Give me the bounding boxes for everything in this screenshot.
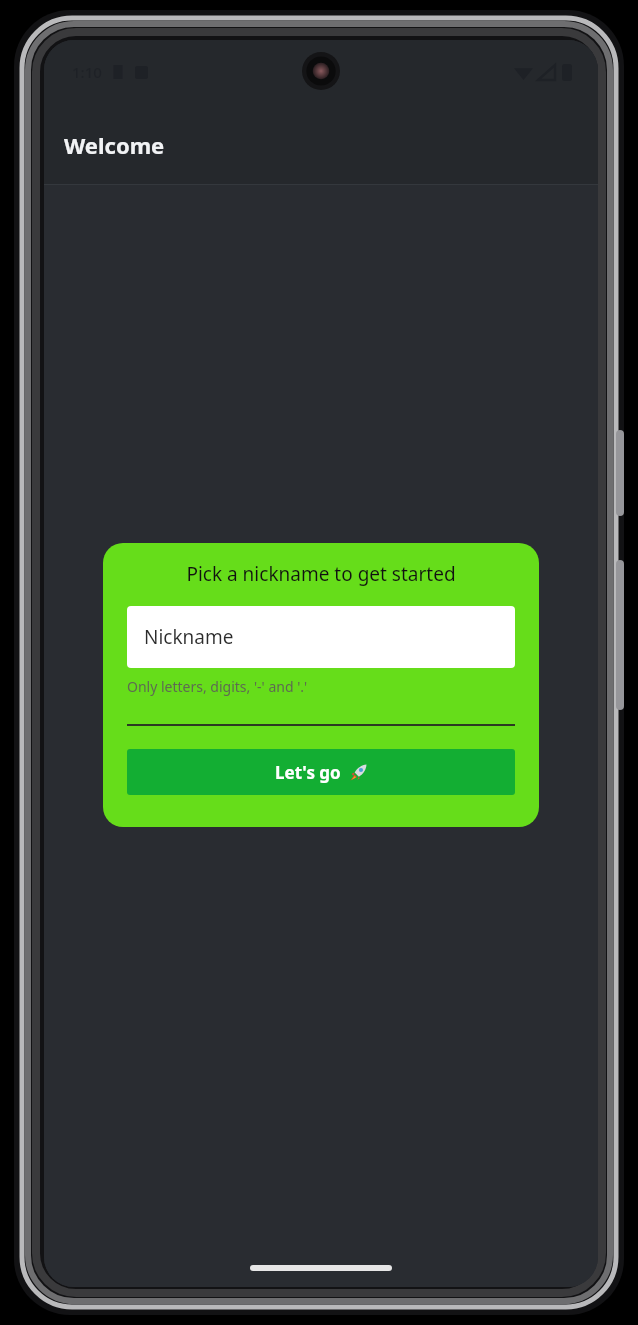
button[interactable]: Let's go [127, 749, 515, 795]
staticText: Pick a nickname to get started [186, 561, 456, 587]
staticText: Only letters, digits, '-' and '.' [127, 677, 515, 696]
staticText: Let's go [275, 761, 341, 784]
other: rocket [349, 763, 368, 782]
button[interactable]: Nickname [127, 606, 515, 668]
staticText: Nickname [144, 624, 234, 650]
staticText: Welcome [64, 130, 165, 160]
